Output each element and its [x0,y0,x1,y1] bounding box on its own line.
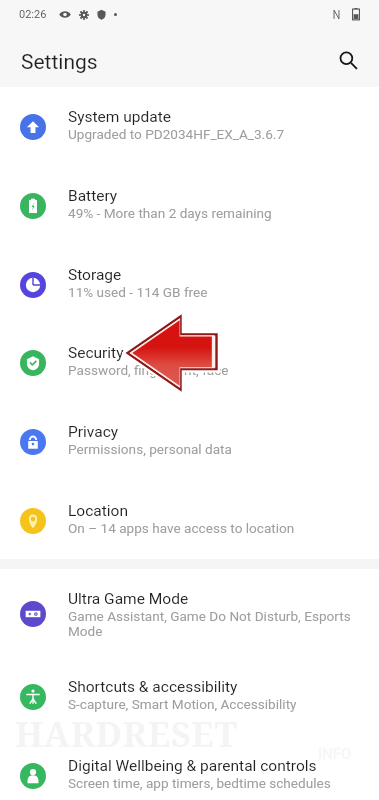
button[interactable]: Shortcuts & accessibility [0,657,379,736]
button[interactable]: Digital Wellbeing & parental controls [0,736,379,800]
staticText: Upgraded to PD2034HF_EX_A_3.6.7 [68,126,285,142]
staticText: 11% used - 114 GB free [68,284,208,300]
button[interactable]: Search [334,46,362,74]
staticText: Permissions, personal data [68,441,232,457]
staticText: Game Assistant, Game Do Not Disturb, Esp… [68,608,353,640]
staticText: Screen time, app timers, bedtime schedul… [68,775,331,791]
staticText: Security [68,344,124,362]
staticText: Shortcuts & accessibility [68,678,238,696]
button[interactable]: Privacy [0,402,379,481]
staticText: Battery [68,187,118,205]
staticText: 49% - More than 2 days remaining [68,205,272,221]
staticText: System update [68,108,171,126]
staticText: Location [68,502,128,520]
button[interactable]: Battery [0,166,379,245]
staticText: Digital Wellbeing & parental controls [68,757,317,775]
button[interactable]: Security [0,323,379,402]
button[interactable]: Storage [0,245,379,324]
staticText: INFO [318,745,352,763]
button[interactable]: Location [0,481,379,560]
staticText: Storage [68,266,122,284]
staticText: Privacy [68,423,119,441]
staticText: Ultra Game Mode [68,590,189,608]
staticText: HARDRESET [15,710,238,757]
button[interactable]: Ultra Game Mode [0,574,379,653]
staticText: Settings [21,50,98,75]
staticText: On – 14 apps have access to location [68,520,295,536]
staticText: S-capture, Smart Motion, Accessibility [68,696,297,712]
staticText: Password, fingerprint, face [68,362,229,378]
staticText: 02:26 [19,8,47,21]
button[interactable]: System update [0,87,379,166]
